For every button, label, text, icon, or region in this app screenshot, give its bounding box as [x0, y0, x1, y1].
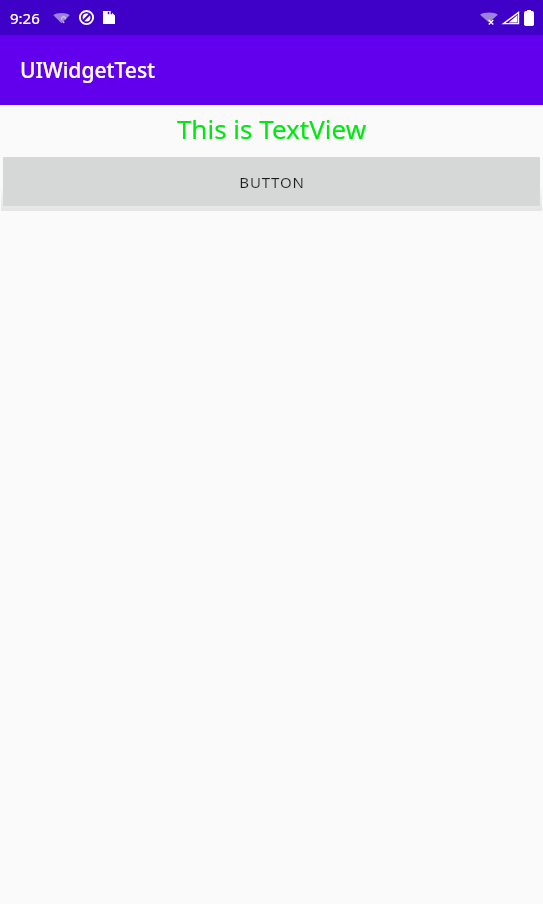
staticText: 9:26 — [10, 8, 40, 28]
button[interactable]: BUTTON — [3, 157, 540, 206]
staticText: BUTTON — [239, 172, 305, 192]
staticText: UIWidgetTest — [20, 56, 156, 85]
staticText: This is TextView — [0, 111, 543, 146]
